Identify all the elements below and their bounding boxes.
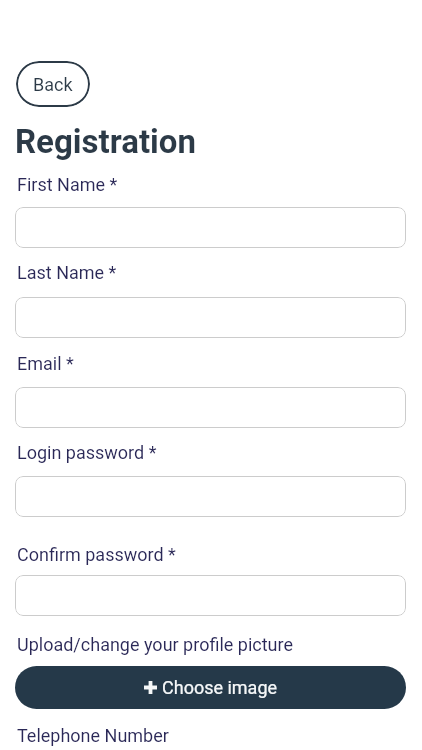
staticText: Last Name * <box>17 262 117 283</box>
button[interactable] <box>15 476 406 517</box>
button[interactable] <box>15 297 406 338</box>
staticText: Email * <box>17 353 74 374</box>
button[interactable] <box>15 207 406 248</box>
button[interactable] <box>15 387 406 428</box>
staticText: First Name * <box>17 174 118 195</box>
button[interactable] <box>15 575 406 616</box>
staticText: Login password * <box>17 442 157 463</box>
staticText: Back <box>33 74 73 95</box>
staticText: Choose image <box>162 677 278 698</box>
staticText: Upload/change your profile picture <box>17 634 293 655</box>
button[interactable]: Back <box>16 61 90 107</box>
staticText: Registration <box>15 122 196 161</box>
button[interactable]: Choose image <box>15 666 406 709</box>
staticText: Confirm password * <box>17 544 176 565</box>
staticText: Telephone Number <box>17 725 169 746</box>
